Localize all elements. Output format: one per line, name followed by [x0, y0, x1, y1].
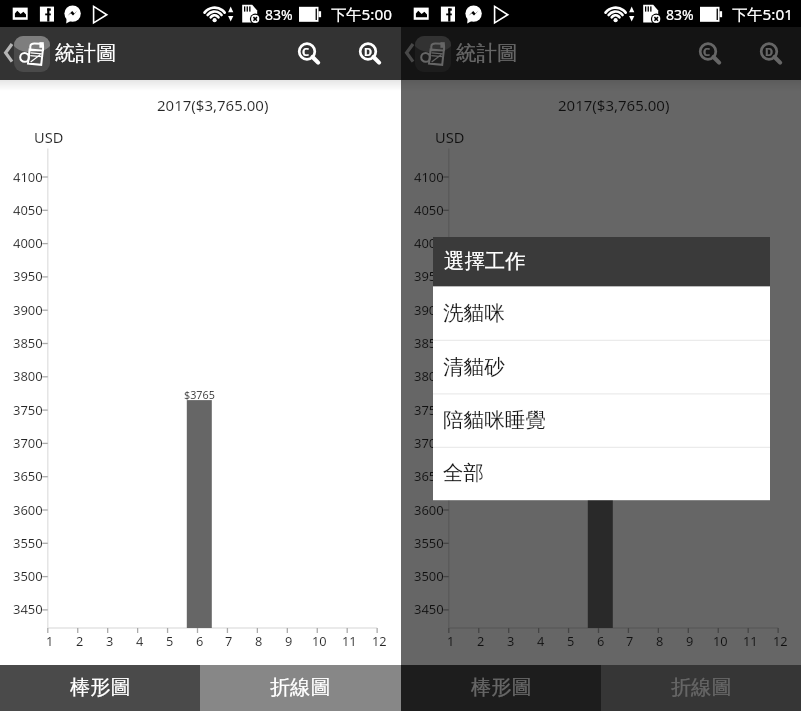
staticText: 3600 [414, 501, 444, 519]
staticText: 3750 [414, 401, 444, 419]
staticText: 1 [46, 632, 54, 649]
staticText: 4 [136, 632, 144, 649]
staticText: $3765 [585, 387, 616, 402]
staticText: 棒形圖 [70, 675, 131, 700]
staticText: 3650 [414, 467, 444, 485]
staticText: 3800 [13, 367, 43, 385]
staticText: 8 [656, 632, 664, 649]
staticText: 3650 [13, 467, 43, 485]
staticText: USD [34, 127, 64, 147]
button[interactable]: 折線圖 [601, 665, 801, 711]
staticText: 3 [106, 632, 114, 649]
staticText: 3900 [414, 301, 444, 319]
staticText: 3550 [13, 534, 43, 552]
button[interactable]: 棒形圖 [0, 665, 200, 711]
staticText: 4100 [414, 168, 444, 186]
staticText: 3700 [414, 434, 444, 452]
staticText: 2017($3,765.00) [157, 95, 269, 115]
staticText: 棒形圖 [471, 675, 532, 700]
staticText: 3900 [13, 301, 43, 319]
staticText: USD [435, 127, 465, 147]
button[interactable] [433, 393, 770, 446]
staticText: 7 [626, 632, 634, 649]
staticText: 3850 [414, 334, 444, 352]
staticText: 4000 [414, 234, 444, 252]
staticText: C [302, 44, 310, 59]
staticText: 全部 [443, 460, 485, 486]
staticText: 4 [537, 632, 545, 649]
staticText: 3850 [13, 334, 43, 352]
staticText: 11 [743, 632, 758, 649]
staticText: 3950 [414, 267, 444, 285]
staticText: 3750 [13, 401, 43, 419]
staticText: 9 [285, 632, 293, 649]
staticText: C [703, 44, 711, 59]
button[interactable]: Search by category [289, 33, 325, 69]
button[interactable]: 棒形圖 [401, 665, 601, 711]
staticText: 10 [312, 632, 327, 649]
staticText: 7 [225, 632, 233, 649]
staticText: 3500 [13, 567, 43, 585]
button[interactable]: Back [0, 35, 18, 71]
staticText: 3800 [414, 367, 444, 385]
button[interactable]: Search by date [350, 33, 386, 69]
staticText: 6 [196, 632, 204, 649]
staticText: 下午5:01 [732, 4, 793, 25]
staticText: 4000 [13, 234, 43, 252]
staticText: 折線圖 [270, 675, 331, 700]
staticText: 3450 [13, 600, 43, 618]
button[interactable]: Search by category [690, 33, 726, 69]
staticText: 3550 [414, 534, 444, 552]
staticText: 陪貓咪睡覺 [443, 407, 546, 433]
staticText: 9 [686, 632, 694, 649]
staticText: 統計圖 [55, 40, 117, 66]
staticText: 3950 [13, 267, 43, 285]
staticText: 83% [666, 5, 694, 24]
button[interactable] [433, 447, 770, 500]
staticText: 折線圖 [671, 675, 732, 700]
button[interactable]: Back [401, 35, 419, 71]
staticText: 4050 [414, 201, 444, 219]
staticText: 3 [507, 632, 515, 649]
staticText: D [364, 44, 373, 59]
staticText: 3500 [414, 567, 444, 585]
staticText: 8 [255, 632, 263, 649]
staticText: 10 [713, 632, 728, 649]
staticText: 清貓砂 [443, 354, 505, 380]
staticText: 4100 [13, 168, 43, 186]
button[interactable] [433, 340, 770, 393]
staticText: D [765, 44, 774, 59]
staticText: 3600 [13, 501, 43, 519]
staticText: 2 [477, 632, 485, 649]
staticText: 12 [372, 632, 387, 649]
staticText: 5 [567, 632, 575, 649]
staticText: 11 [342, 632, 357, 649]
staticText: 2 [76, 632, 84, 649]
staticText: 12 [773, 632, 788, 649]
staticText: 83% [265, 5, 293, 24]
button[interactable] [433, 286, 770, 339]
staticText: 3700 [13, 434, 43, 452]
staticText: 4050 [13, 201, 43, 219]
button[interactable]: Search by date [751, 33, 787, 69]
staticText: 6 [597, 632, 605, 649]
staticText: 5 [166, 632, 174, 649]
staticText: 選擇工作 [444, 248, 526, 274]
button[interactable]: 折線圖 [200, 665, 401, 711]
staticText: 統計圖 [456, 40, 518, 66]
staticText: 1 [447, 632, 455, 649]
staticText: 2017($3,765.00) [558, 95, 670, 115]
staticText: 洗貓咪 [443, 300, 505, 326]
staticText: 3450 [414, 600, 444, 618]
staticText: 下午5:00 [331, 4, 392, 25]
staticText: $3765 [184, 387, 215, 402]
